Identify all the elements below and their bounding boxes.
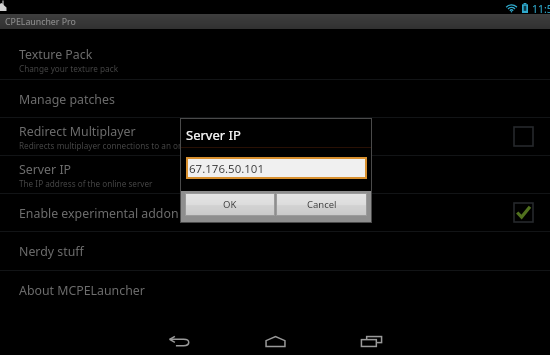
button[interactable]: Texture Pack [0, 40, 550, 77]
staticText: Nerdy stuff [19, 243, 84, 260]
button[interactable]: 67.176.50.101 [188, 159, 365, 177]
button[interactable]: Unchecked [510, 123, 536, 149]
staticText: Enable experimental addon support [19, 205, 228, 222]
staticText: Cancel [307, 198, 337, 211]
staticText: Server IP [19, 161, 72, 178]
button[interactable]: Server IP [0, 155, 550, 192]
button[interactable]: Manage patches [0, 79, 550, 116]
staticText: The IP address of the online server [19, 178, 153, 189]
button[interactable]: Enable experimental addon support [0, 193, 550, 230]
button[interactable]: OK [186, 194, 274, 215]
staticText: 67.176.50.101 [189, 161, 265, 177]
staticText: Server IP [186, 126, 241, 144]
button[interactable]: Redirect Multiplayer [0, 117, 550, 154]
staticText: About MCPELauncher [19, 282, 145, 299]
button[interactable]: Checked [510, 199, 536, 225]
button[interactable]: Cancel [277, 194, 366, 215]
staticText: Change your texture pack [19, 63, 119, 74]
button[interactable]: Back [151, 315, 207, 355]
staticText: Manage patches [19, 91, 115, 108]
staticText: Redirects multiplayer connections to an … [19, 140, 224, 151]
staticText: 11:5 [532, 2, 550, 16]
button[interactable]: Home [247, 315, 303, 355]
staticText: CPELauncher Pro [5, 16, 76, 28]
button[interactable]: Nerdy stuff [0, 231, 550, 268]
staticText: Texture Pack [19, 46, 93, 63]
staticText: OK [223, 198, 237, 211]
staticText: Redirect Multiplayer [19, 123, 136, 140]
button[interactable]: Recent apps [343, 315, 399, 355]
button[interactable]: About MCPELauncher [0, 270, 550, 307]
